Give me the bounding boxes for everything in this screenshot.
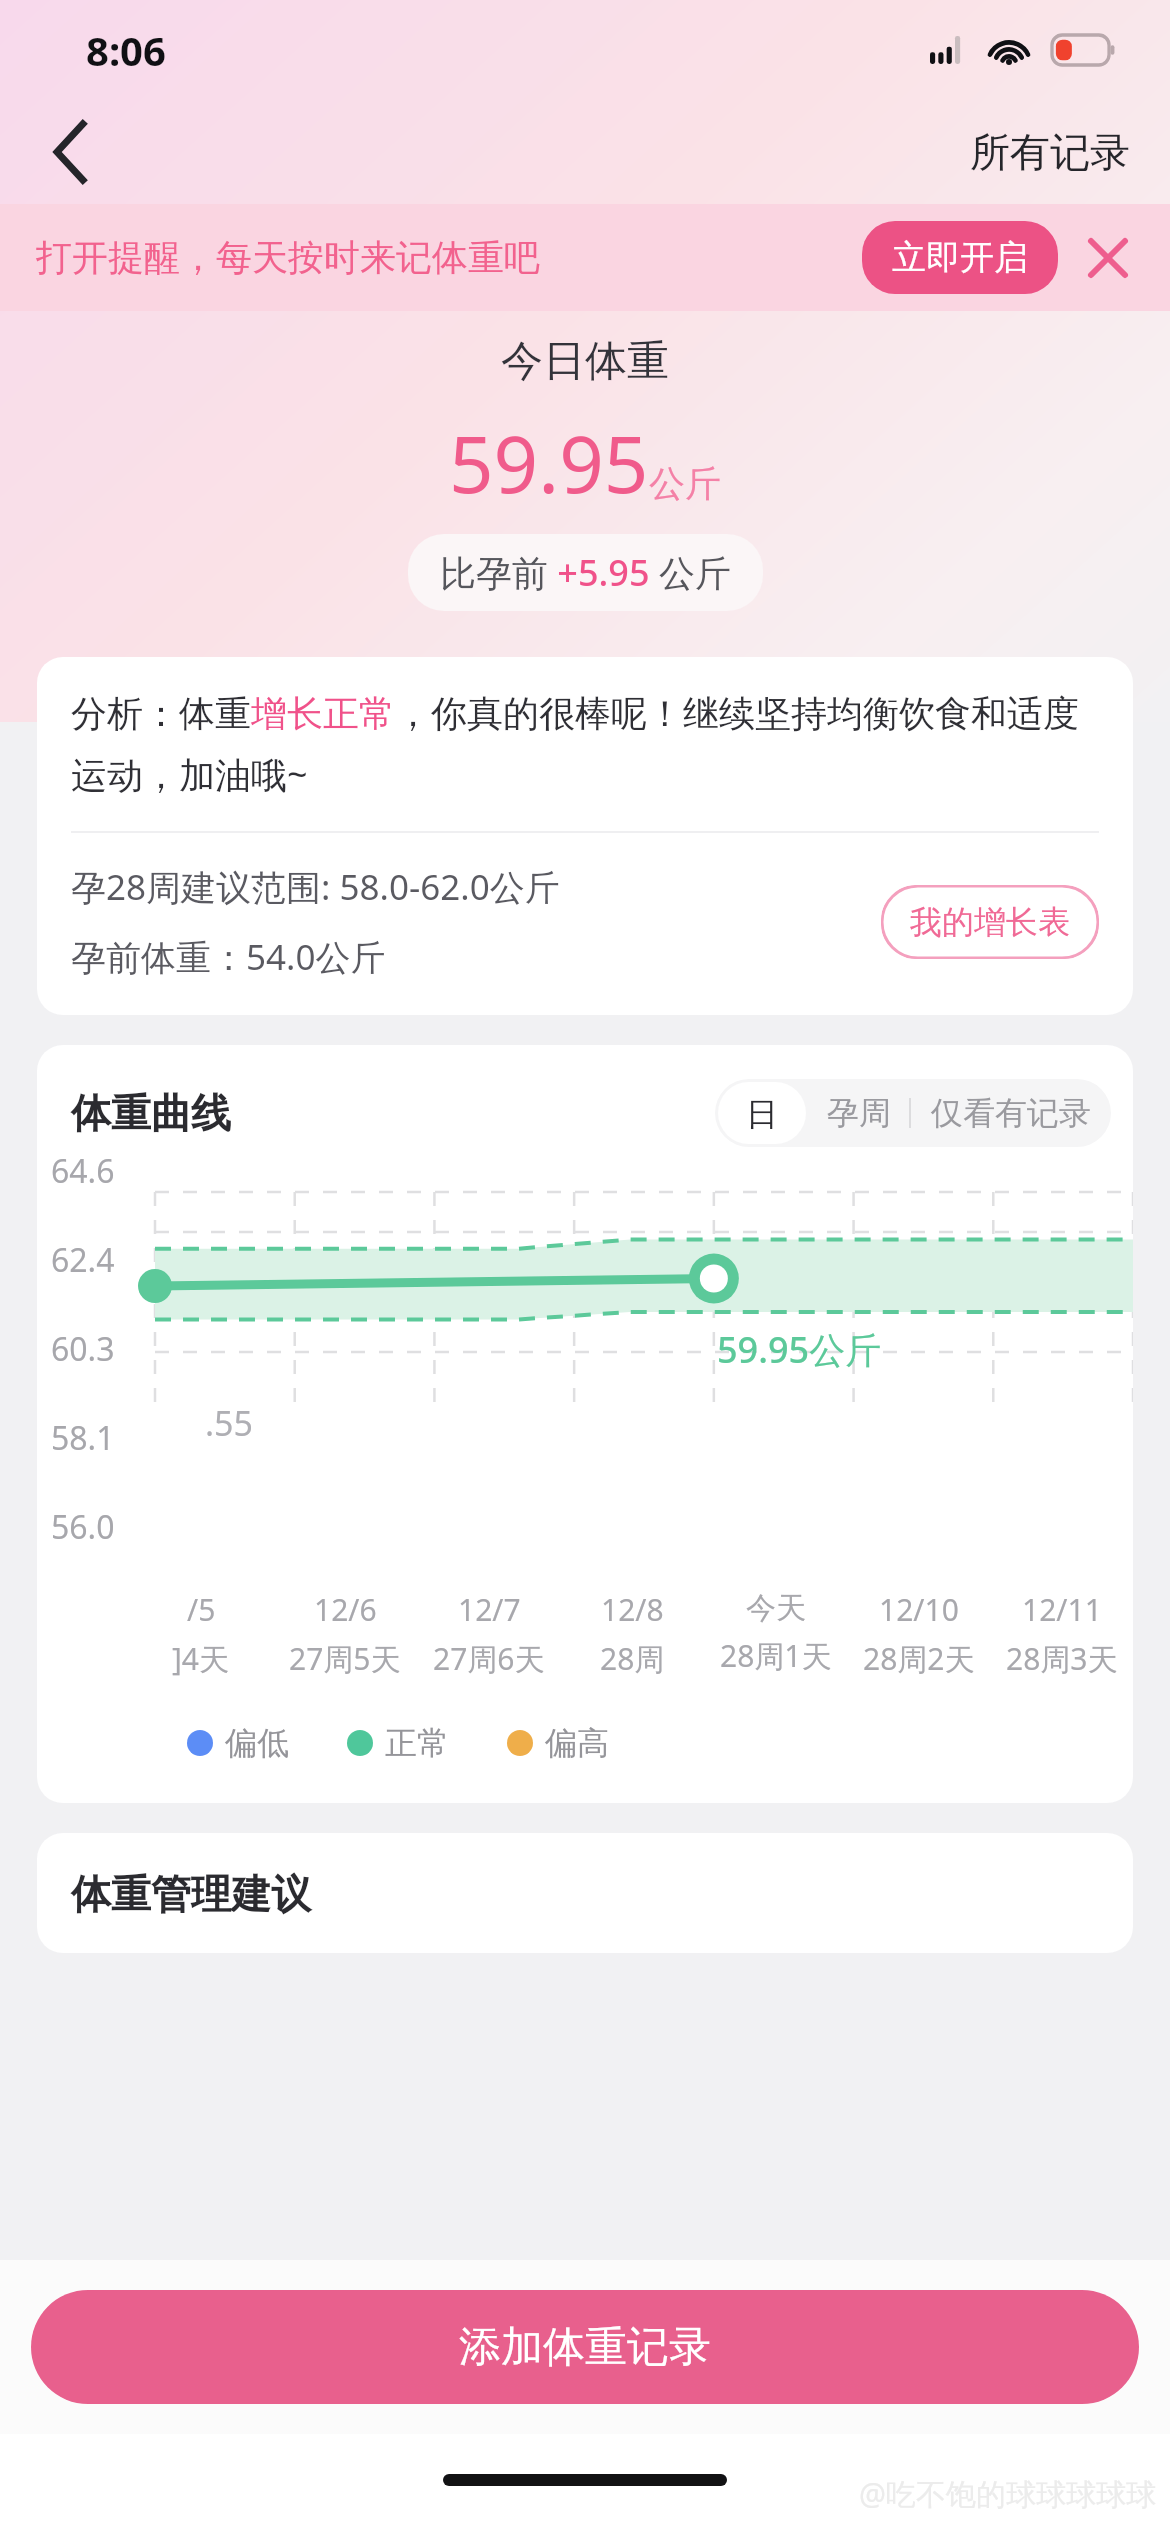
button[interactable]: 偏低 [187, 1723, 289, 1763]
staticText: 12/11 [1022, 1589, 1102, 1630]
staticText: 58.1 [51, 1416, 115, 1460]
staticText: 添加体重记录 [459, 2321, 711, 2374]
staticText: 59.95 [449, 410, 649, 516]
staticText: 8:06 [86, 23, 166, 77]
staticText: 打开提醒，每天按时来记体重吧 [36, 235, 540, 280]
button[interactable]: 立即开启 [862, 221, 1058, 294]
staticText: 28周3天 [1006, 1638, 1118, 1679]
staticText: 立即开启 [892, 236, 1028, 279]
staticText: 体重管理建议 [71, 1869, 311, 1919]
button[interactable]: 日 [718, 1082, 806, 1144]
staticText: 我的增长表 [910, 902, 1070, 942]
staticText: @吃不饱的球球球球球 [859, 2473, 1156, 2514]
button[interactable]: Close [1072, 222, 1144, 294]
staticText: 公斤 [649, 461, 721, 506]
staticText: 62.4 [51, 1238, 115, 1282]
button[interactable]: 我的增长表 [881, 885, 1099, 959]
button[interactable]: 体重管理建议 [37, 1833, 1133, 1953]
staticText: /5 [187, 1589, 216, 1630]
button[interactable]: 偏高 [507, 1723, 609, 1763]
staticText: 28周 [600, 1638, 665, 1679]
staticText: 比孕前 +5.95 公斤 [440, 548, 731, 597]
staticText: 12/6 [314, 1589, 377, 1630]
staticText: .55 [205, 1400, 254, 1446]
staticText: 64.6 [51, 1149, 115, 1193]
staticText: 正常 [385, 1723, 449, 1763]
staticText: 12/10 [879, 1589, 959, 1630]
staticText: 56.0 [51, 1505, 115, 1549]
staticText: 59.95公斤 [717, 1325, 882, 1374]
staticText: 今日体重 [501, 335, 669, 388]
staticText: 12/7 [458, 1589, 521, 1630]
staticText: 偏低 [225, 1723, 289, 1763]
staticText: 体重曲线 [71, 1088, 231, 1138]
staticText: 60.3 [51, 1327, 115, 1371]
staticText: 日 [746, 1094, 778, 1132]
button[interactable]: 分析：体重增长正常，你真的很棒呢！继续坚持均衡饮食和适度运动，加油哦~ [37, 657, 1133, 1015]
staticText: 12/8 [601, 1589, 664, 1630]
staticText: 27周5天 [289, 1638, 401, 1679]
staticText: 孕28周建议范围: 58.0-62.0公斤 [71, 863, 560, 911]
button[interactable]: 孕周 [809, 1081, 909, 1145]
staticText: 偏高 [545, 1723, 609, 1763]
staticText: 孕周 [827, 1093, 891, 1133]
staticText: 仅看有记录 [931, 1093, 1091, 1133]
button[interactable]: 比孕前 +5.95 公斤 [408, 534, 763, 611]
staticText: 孕前体重：54.0公斤 [71, 933, 386, 981]
staticText: 27周6天 [433, 1638, 545, 1679]
button[interactable]: 添加体重记录 [31, 2290, 1139, 2404]
staticText: 28周1天 [720, 1635, 832, 1676]
button[interactable]: Back [22, 104, 118, 200]
staticText: 今天 [746, 1589, 806, 1627]
staticText: ]4天 [172, 1638, 230, 1679]
staticText: 28周2天 [863, 1638, 975, 1679]
button[interactable]: 所有记录 [964, 121, 1136, 183]
button[interactable]: 正常 [347, 1723, 449, 1763]
staticText: 分析：体重增长正常，你真的很棒呢！继续坚持均衡饮食和适度运动，加油哦~ [71, 691, 1099, 799]
button[interactable]: 仅看有记录 [911, 1081, 1111, 1145]
